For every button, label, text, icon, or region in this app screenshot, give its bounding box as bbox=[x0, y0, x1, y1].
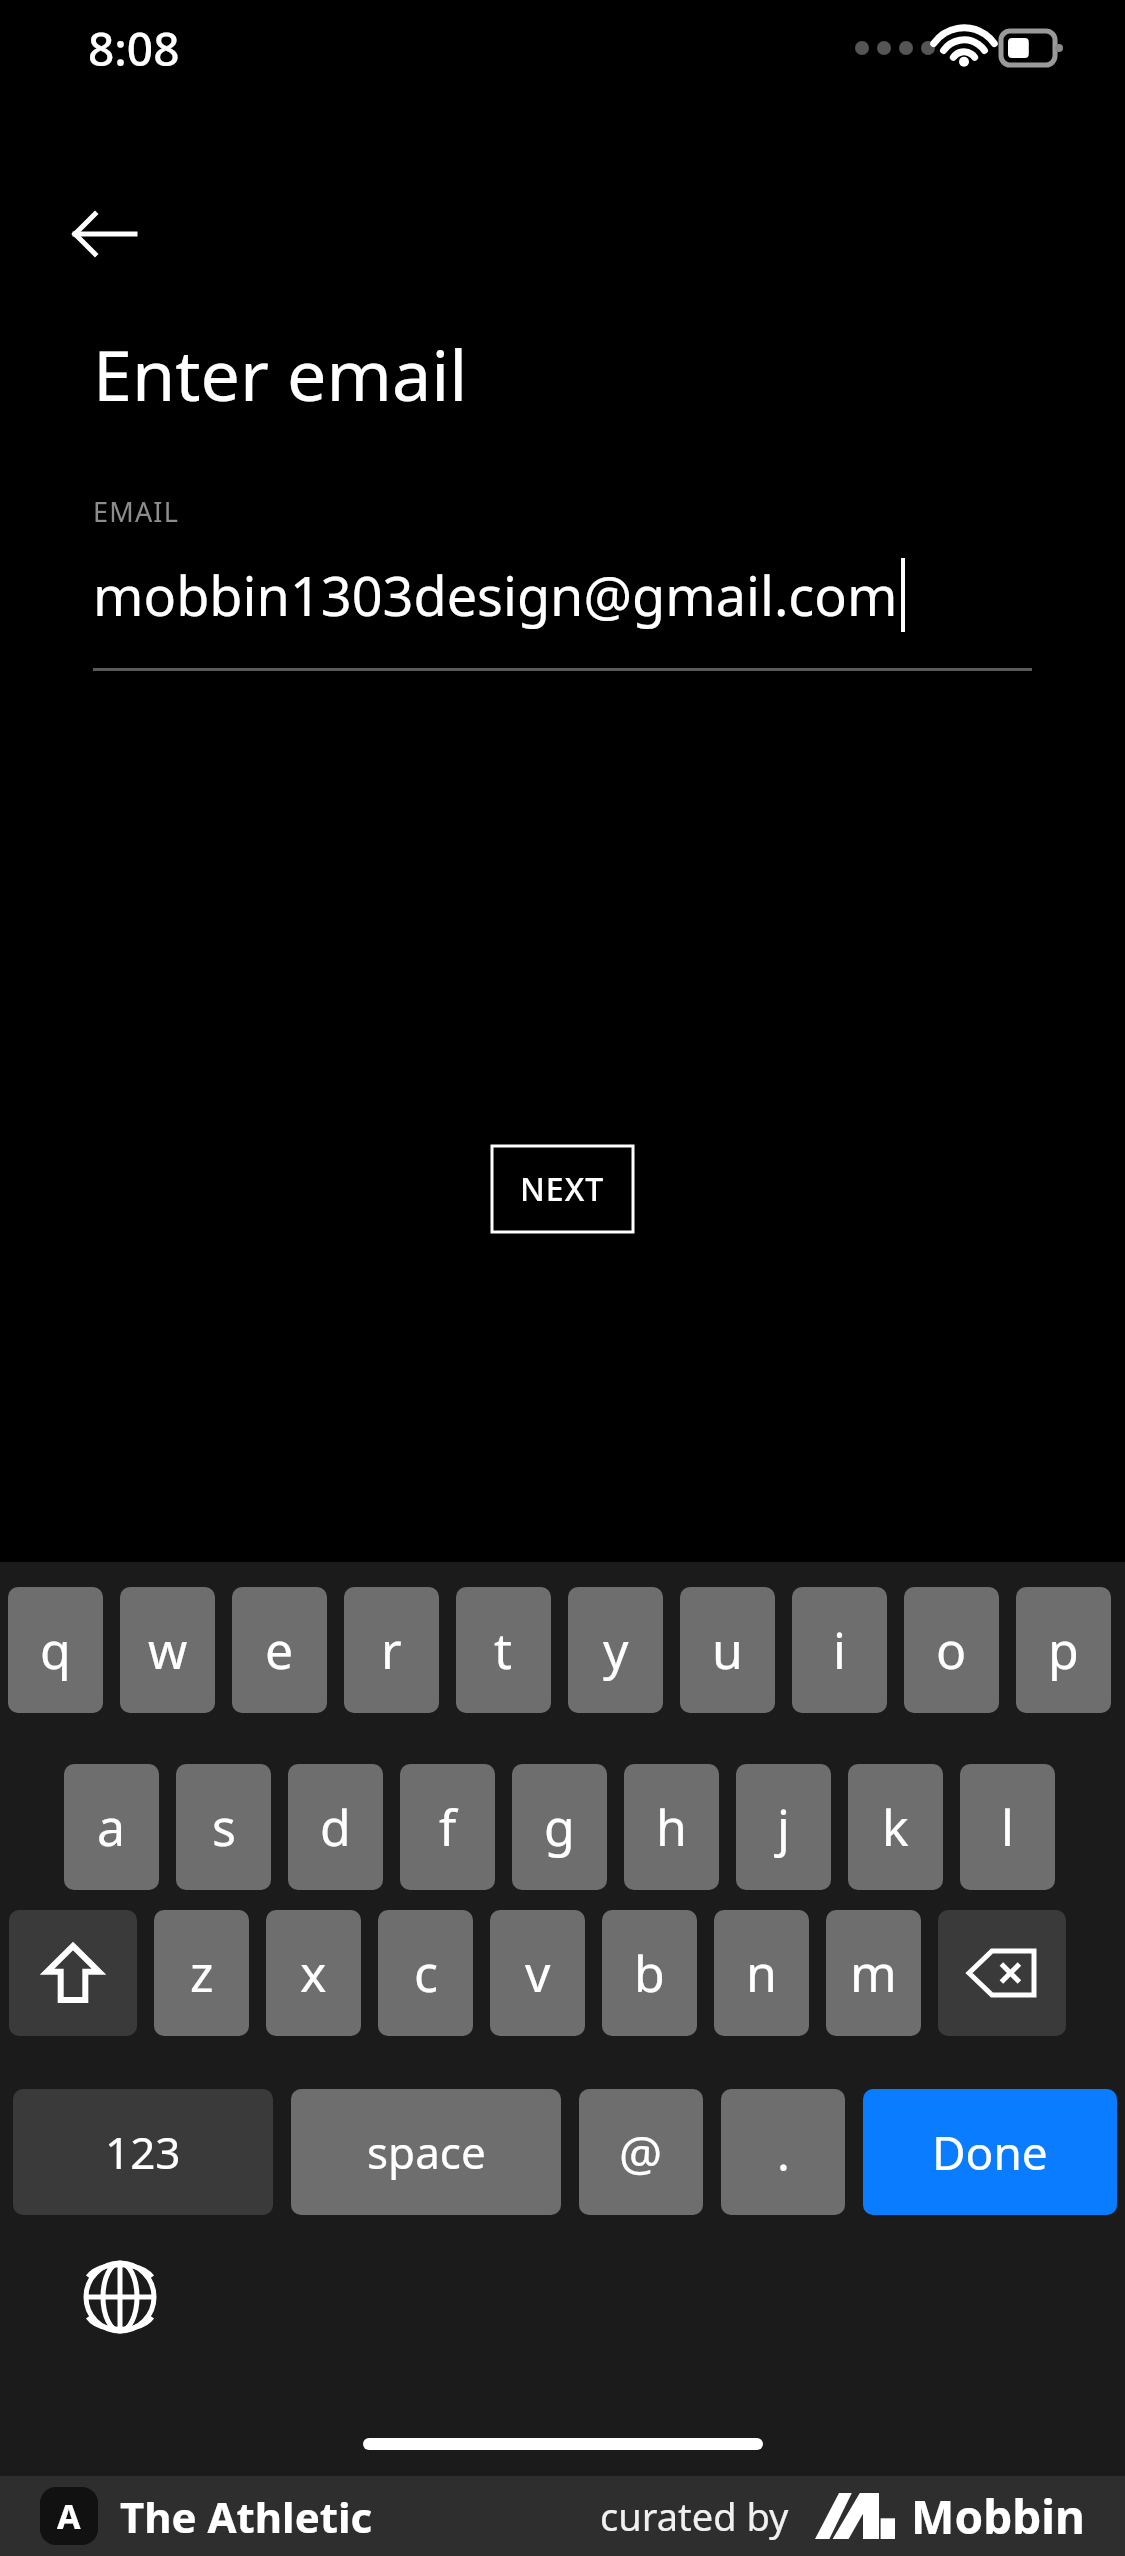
staticText: EMAIL bbox=[93, 493, 180, 530]
button[interactable]: mobbin1303design@gmail.com bbox=[93, 558, 1032, 632]
button[interactable]: d bbox=[288, 1764, 383, 1890]
staticText: w bbox=[148, 1616, 188, 1684]
button[interactable]: . bbox=[721, 2089, 845, 2215]
staticText: mobbin1303design@gmail.com bbox=[93, 558, 898, 632]
button[interactable]: c bbox=[378, 1910, 473, 2036]
staticText: A bbox=[57, 2493, 81, 2539]
button[interactable]: h bbox=[624, 1764, 719, 1890]
staticText: i bbox=[833, 1616, 846, 1684]
button[interactable]: Backspace bbox=[938, 1910, 1066, 2036]
button[interactable]: b bbox=[602, 1910, 697, 2036]
staticText: Done bbox=[932, 2121, 1048, 2184]
staticText: s bbox=[212, 1793, 236, 1861]
staticText: Mobbin bbox=[911, 2485, 1085, 2548]
button[interactable]: Back bbox=[62, 192, 146, 276]
staticText: space bbox=[367, 2122, 486, 2182]
staticText: g bbox=[544, 1793, 575, 1861]
staticText: c bbox=[414, 1939, 438, 2007]
staticText: k bbox=[882, 1793, 909, 1861]
staticText: 8:08 bbox=[88, 17, 180, 80]
staticText: x bbox=[300, 1939, 327, 2007]
staticText: n bbox=[746, 1939, 777, 2007]
staticText: d bbox=[320, 1793, 351, 1861]
button[interactable]: z bbox=[154, 1910, 249, 2036]
button[interactable]: NEXT bbox=[492, 1146, 633, 1232]
button[interactable]: a bbox=[64, 1764, 159, 1890]
staticText: t bbox=[494, 1616, 513, 1684]
staticText: b bbox=[634, 1939, 665, 2007]
staticText: The Athletic bbox=[120, 2488, 373, 2545]
button[interactable]: Shift bbox=[9, 1910, 137, 2036]
staticText: y bbox=[603, 1616, 629, 1684]
staticText: f bbox=[439, 1793, 457, 1861]
staticText: z bbox=[190, 1939, 214, 2007]
staticText: a bbox=[97, 1793, 126, 1861]
staticText: NEXT bbox=[520, 1167, 605, 1211]
button[interactable]: f bbox=[400, 1764, 495, 1890]
button[interactable]: n bbox=[714, 1910, 809, 2036]
button[interactable]: o bbox=[904, 1587, 999, 1713]
button[interactable]: s bbox=[176, 1764, 271, 1890]
staticText: 123 bbox=[105, 2122, 181, 2182]
button[interactable]: v bbox=[490, 1910, 585, 2036]
staticText: q bbox=[40, 1616, 71, 1684]
staticText: j bbox=[777, 1793, 790, 1861]
staticText: u bbox=[712, 1616, 743, 1684]
button[interactable]: y bbox=[568, 1587, 663, 1713]
button[interactable]: g bbox=[512, 1764, 607, 1890]
staticText: h bbox=[656, 1793, 687, 1861]
staticText: o bbox=[936, 1616, 967, 1684]
button[interactable]: t bbox=[456, 1587, 551, 1713]
button[interactable]: Done bbox=[863, 2089, 1117, 2215]
button[interactable]: k bbox=[848, 1764, 943, 1890]
button[interactable]: x bbox=[266, 1910, 361, 2036]
button[interactable]: q bbox=[8, 1587, 103, 1713]
staticText: Enter email bbox=[93, 326, 468, 421]
button[interactable]: space bbox=[291, 2089, 561, 2215]
button[interactable]: u bbox=[680, 1587, 775, 1713]
staticText: . bbox=[777, 2120, 790, 2185]
button[interactable]: p bbox=[1016, 1587, 1111, 1713]
staticText: r bbox=[381, 1616, 402, 1684]
button[interactable]: i bbox=[792, 1587, 887, 1713]
staticText: @ bbox=[619, 2120, 663, 2185]
staticText: m bbox=[850, 1939, 897, 2007]
button[interactable]: j bbox=[736, 1764, 831, 1890]
button[interactable]: Change keyboard language bbox=[78, 2255, 162, 2339]
staticText: v bbox=[525, 1939, 551, 2007]
staticText: l bbox=[1001, 1793, 1014, 1861]
button[interactable]: r bbox=[344, 1587, 439, 1713]
button[interactable]: l bbox=[960, 1764, 1055, 1890]
button[interactable]: w bbox=[120, 1587, 215, 1713]
button[interactable]: 123 bbox=[13, 2089, 273, 2215]
staticText: p bbox=[1048, 1616, 1079, 1684]
button[interactable]: e bbox=[232, 1587, 327, 1713]
button[interactable]: @ bbox=[579, 2089, 703, 2215]
button[interactable]: m bbox=[826, 1910, 921, 2036]
staticText: curated by bbox=[600, 2490, 789, 2542]
staticText: e bbox=[265, 1616, 294, 1684]
